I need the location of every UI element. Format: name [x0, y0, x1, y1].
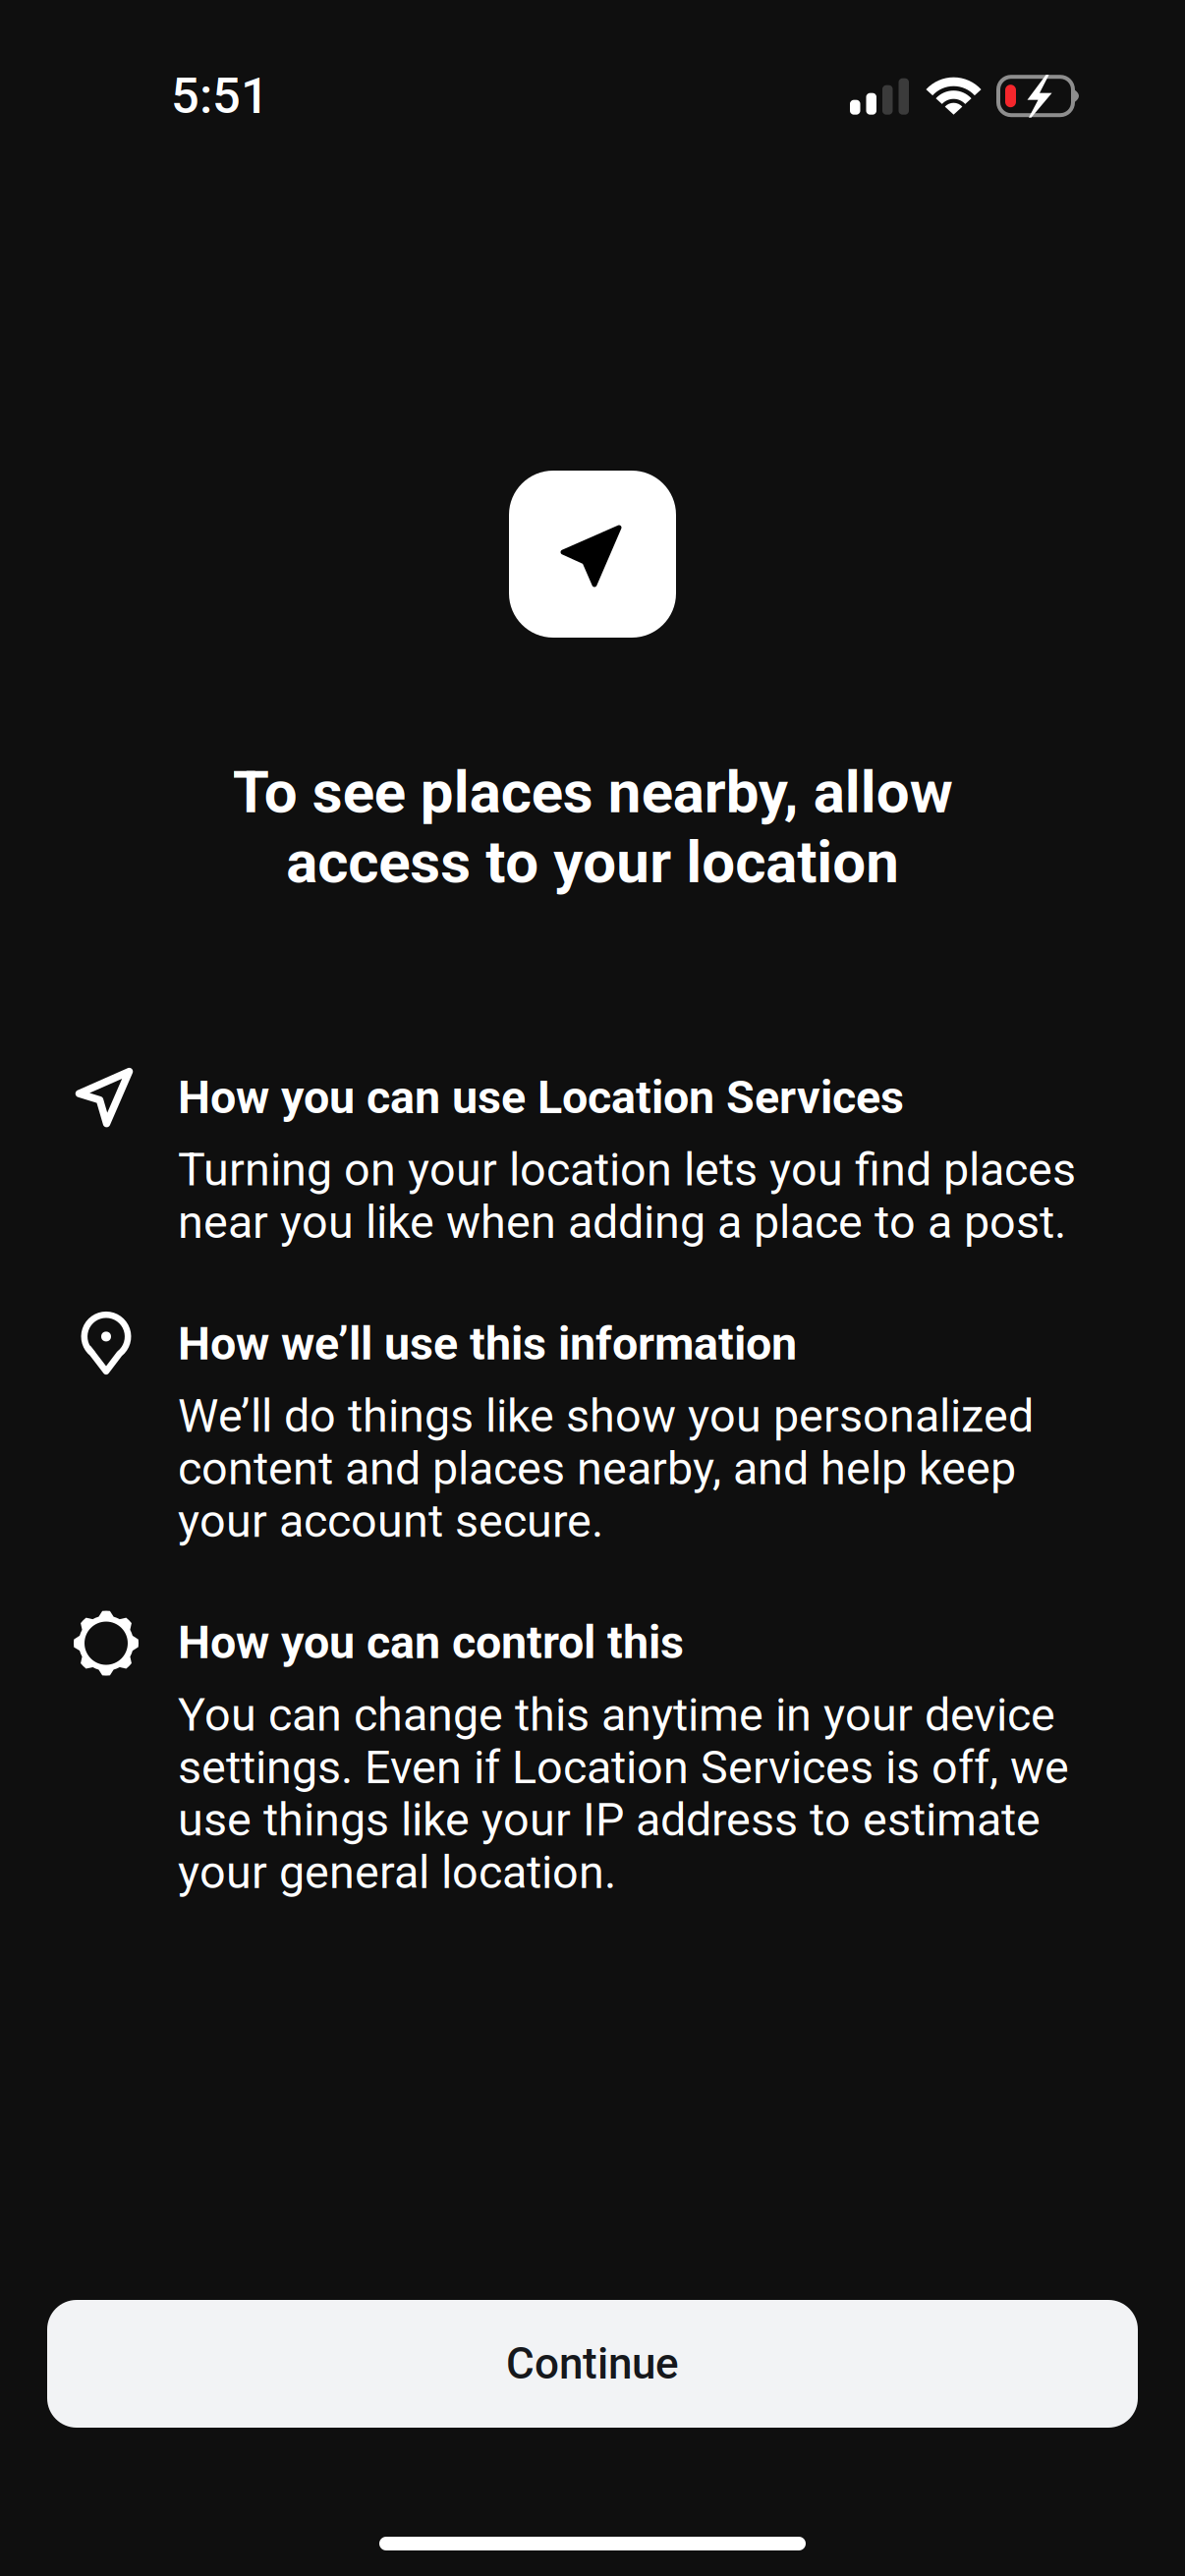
staticText: Continue	[506, 2338, 679, 2389]
staticText: To see places nearby, allow access to yo…	[232, 757, 953, 897]
staticText: How you can use Location Services	[178, 1070, 904, 1124]
staticText: 5:51	[171, 67, 269, 125]
staticText: How we’ll use this information	[178, 1317, 797, 1371]
button[interactable]: Continue	[47, 2300, 1138, 2428]
staticText: Turning on your location lets you find p…	[178, 1143, 1076, 1249]
staticText: You can change this anytime in your devi…	[178, 1688, 1069, 1899]
staticText: How you can control this	[178, 1616, 684, 1669]
staticText: We’ll do things like show you personaliz…	[178, 1389, 1034, 1548]
